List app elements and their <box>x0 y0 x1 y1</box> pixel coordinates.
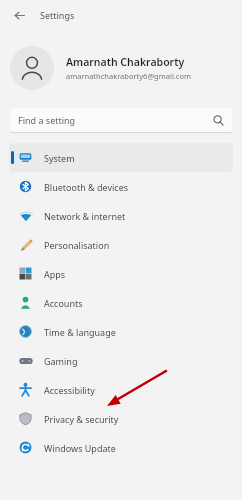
button[interactable]: Accessibility <box>9 375 233 404</box>
staticText: Time & language <box>44 326 116 338</box>
button[interactable]: Windows Update <box>9 433 233 462</box>
staticText: Settings <box>40 9 75 21</box>
staticText: Amarnath Chakraborty <box>66 55 185 69</box>
button[interactable]: Privacy & security <box>9 404 233 433</box>
staticText: Gaming <box>44 355 78 367</box>
staticText: Accessibility <box>44 384 95 396</box>
staticText: Personalisation <box>44 239 110 251</box>
staticText: amarnathchakraborty6@gmail.com <box>66 71 191 81</box>
staticText: Privacy & security <box>44 413 119 425</box>
button[interactable]: Bluetooth & devices <box>9 172 233 201</box>
button[interactable]: Accounts <box>9 288 233 317</box>
button[interactable]: Find a setting <box>10 108 232 132</box>
staticText: Network & internet <box>44 210 126 222</box>
button[interactable]: Amarnath Chakraborty <box>10 42 232 94</box>
staticText: Accounts <box>44 297 83 309</box>
button[interactable]: Time & language <box>9 317 233 346</box>
staticText: Find a setting <box>18 114 213 126</box>
button[interactable]: Personalisation <box>9 230 233 259</box>
button[interactable]: Network & internet <box>9 201 233 230</box>
button[interactable]: Back <box>8 4 30 26</box>
staticText: Windows Update <box>44 442 116 454</box>
staticText: Apps <box>44 268 66 280</box>
button[interactable]: Apps <box>9 259 233 288</box>
button[interactable]: System <box>9 143 233 172</box>
staticText: System <box>44 152 75 164</box>
button[interactable]: Gaming <box>9 346 233 375</box>
staticText: Bluetooth & devices <box>44 181 129 193</box>
